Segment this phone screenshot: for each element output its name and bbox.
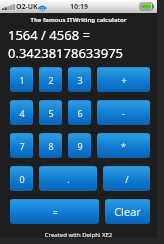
staticText: 9 [77,140,83,152]
staticText: . [67,173,70,185]
button[interactable]: 1 [10,67,33,92]
staticText: * [121,140,126,152]
staticText: 0 [19,173,25,185]
staticText: 1 [19,74,25,86]
staticText: O2-UK [16,2,38,12]
button[interactable]: 6 [68,100,91,125]
button[interactable]: Clear [105,199,150,224]
button[interactable]: * [97,133,150,158]
button[interactable]: 7 [10,133,33,158]
staticText: Created with Delphi XE2 [0,231,157,238]
staticText: 4 [19,107,25,119]
button[interactable]: 2 [39,67,62,92]
staticText: 5 [48,107,54,119]
button[interactable]: . [39,166,97,191]
button[interactable]: 9 [68,133,91,158]
button[interactable]: 5 [39,100,62,125]
staticText: + [121,74,127,86]
button[interactable]: / [103,166,150,191]
button[interactable]: + [97,67,150,92]
staticText: Clear [114,204,141,219]
staticText: The famous ITWriting calculator [0,16,157,24]
staticText: 6 [77,107,83,119]
staticText: = [52,206,58,218]
button[interactable]: 0 [10,166,33,191]
button[interactable]: = [10,199,99,224]
staticText: - [122,107,125,119]
staticText: 8 [48,140,54,152]
staticText: 10:19 [70,2,88,12]
button[interactable]: - [97,100,150,125]
staticText: 1564 / 4568 = [8,26,90,44]
staticText: / [125,173,129,185]
staticText: 0.34238178633975 [8,44,124,62]
button[interactable]: 8 [39,133,62,158]
staticText: 7 [19,140,25,152]
button[interactable]: 3 [68,67,91,92]
staticText: 3 [77,74,83,86]
button[interactable]: 4 [10,100,33,125]
staticText: 2 [48,74,54,86]
